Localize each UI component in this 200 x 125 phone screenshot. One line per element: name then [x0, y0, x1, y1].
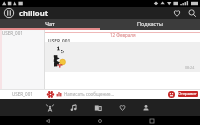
- staticText: Написать сообщение...: [64, 91, 115, 97]
- staticText: Подкасты: [137, 20, 163, 27]
- staticText: USER_001: [12, 91, 33, 97]
- staticText: Чат: [45, 20, 55, 27]
- staticText: chillout: [19, 8, 48, 18]
- button[interactable]: Settings: [46, 90, 54, 98]
- button[interactable]: Favorites: [110, 99, 134, 116]
- button[interactable]: Radio: [38, 99, 62, 116]
- button[interactable]: Music: [62, 99, 86, 116]
- button[interactable]: Profile: [134, 99, 158, 116]
- button[interactable]: Recent apps: [137, 116, 167, 125]
- button[interactable]: USER_001: [0, 29, 44, 37]
- button[interactable]: Подкасты: [100, 19, 200, 28]
- button[interactable]: Emoji: [168, 91, 175, 98]
- staticText: 12 Февраля: [110, 32, 136, 38]
- button[interactable]: Home: [85, 116, 115, 125]
- staticText: USER_001: [48, 38, 71, 45]
- button[interactable]: USER_001: [0, 89, 44, 99]
- button[interactable]: Podcasts: [86, 99, 110, 116]
- staticText: 08:24: [185, 65, 195, 70]
- staticText: Отправить: [178, 91, 198, 97]
- button[interactable]: Search: [186, 7, 198, 19]
- button[interactable]: Написать сообщение...: [64, 89, 168, 99]
- button[interactable]: Favorites: [171, 7, 183, 19]
- staticText: USER_001: [2, 30, 23, 36]
- button[interactable]: Отправить: [178, 91, 198, 97]
- button[interactable]: Equalizer: [55, 90, 63, 98]
- button[interactable]: Back: [33, 116, 63, 125]
- button[interactable]: Play or pause: [3, 7, 15, 19]
- button[interactable]: Чат: [0, 19, 100, 28]
